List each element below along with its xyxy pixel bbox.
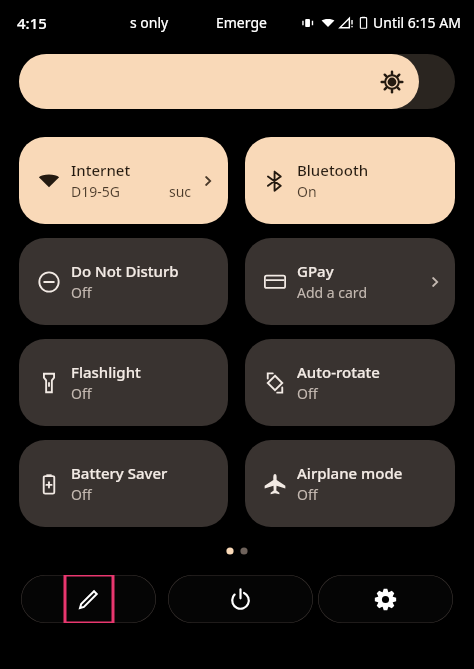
staticText: Emerge	[216, 13, 267, 32]
staticText: Off	[71, 283, 92, 302]
staticText: D19-5G	[71, 182, 120, 201]
button[interactable]: Settings	[318, 575, 453, 623]
button[interactable]: Auto-rotate	[245, 339, 455, 426]
button[interactable]: Power	[168, 575, 313, 623]
button[interactable]: Edit	[21, 575, 156, 623]
staticText: Add a card	[297, 283, 367, 302]
staticText: Do Not Disturb	[71, 261, 179, 281]
staticText: suc	[169, 182, 192, 201]
button[interactable]: Brightness	[19, 54, 419, 109]
staticText: Airplane mode	[297, 463, 403, 483]
button[interactable]: Airplane mode	[245, 440, 455, 527]
staticText: Off	[71, 485, 92, 504]
staticText: Bluetooth	[297, 160, 369, 180]
staticText: Flashlight	[71, 362, 141, 382]
staticText: 4:15	[17, 13, 47, 33]
staticText: Off	[297, 384, 318, 403]
button[interactable]: Battery Saver	[19, 440, 228, 527]
button[interactable]: Do Not Disturb	[19, 238, 228, 325]
button[interactable]: Internet	[19, 137, 228, 224]
button[interactable]: Bluetooth	[245, 137, 455, 224]
staticText: Battery Saver	[71, 463, 168, 483]
staticText: Off	[71, 384, 92, 403]
staticText: Until 6:15 AM	[373, 13, 461, 32]
staticText: GPay	[297, 261, 334, 281]
staticText: On	[297, 182, 317, 201]
staticText: Auto-rotate	[297, 362, 380, 382]
staticText: Internet	[71, 160, 131, 180]
staticText: Off	[297, 485, 318, 504]
button[interactable]: Flashlight	[19, 339, 228, 426]
staticText: s only	[130, 13, 169, 32]
button[interactable]: GPay	[245, 238, 455, 325]
